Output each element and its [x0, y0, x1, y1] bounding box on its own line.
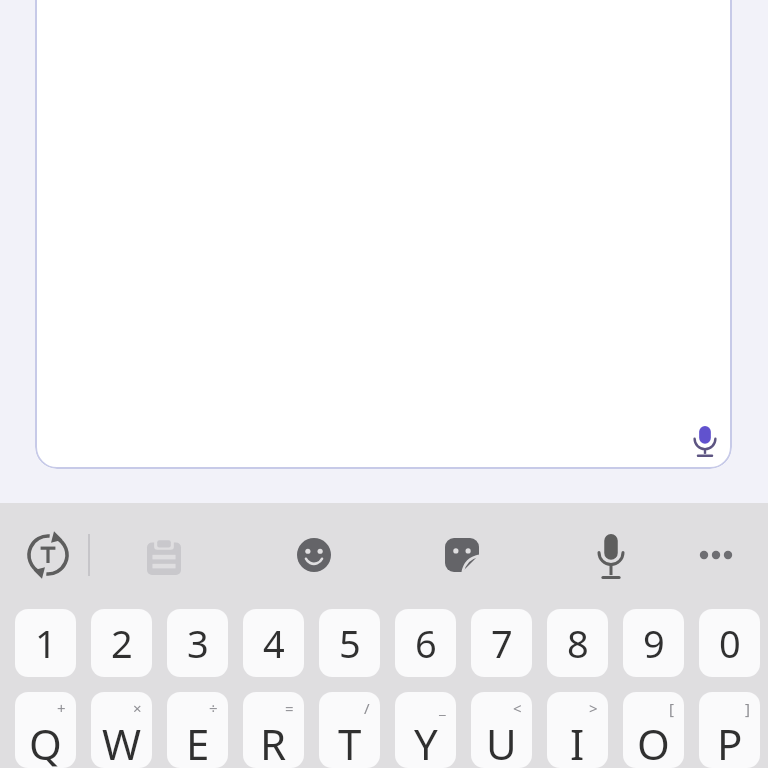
button[interactable]: 8 — [547, 609, 608, 677]
staticText: 5 — [339, 617, 361, 669]
staticText: = — [285, 698, 294, 718]
staticText: / — [364, 698, 370, 718]
button[interactable]: ] — [699, 692, 760, 768]
button[interactable]: / — [319, 692, 380, 768]
button[interactable]: 0 — [699, 609, 760, 677]
staticText: 3 — [187, 617, 209, 669]
staticText: ÷ — [209, 698, 218, 718]
staticText: + — [57, 698, 66, 718]
staticText: × — [133, 698, 142, 718]
button[interactable]: 5 — [319, 609, 380, 677]
staticText: R — [260, 715, 287, 768]
staticText: Y — [414, 715, 438, 768]
staticText: I — [570, 715, 585, 768]
staticText: ] — [745, 698, 750, 718]
button[interactable]: [ — [623, 692, 684, 768]
staticText: U — [486, 715, 517, 768]
button[interactable]: × — [91, 692, 152, 768]
button[interactable] — [445, 538, 479, 572]
staticText: 1 — [35, 617, 57, 669]
button[interactable]: = — [243, 692, 304, 768]
button[interactable] — [26, 533, 70, 577]
staticText: W — [102, 715, 142, 768]
button[interactable] — [596, 534, 626, 579]
staticText: > — [589, 698, 598, 718]
button[interactable] — [35, 0, 732, 469]
button[interactable]: 6 — [395, 609, 456, 677]
button[interactable]: 4 — [243, 609, 304, 677]
button[interactable]: + — [15, 692, 76, 768]
staticText: [ — [669, 698, 674, 718]
button[interactable]: 2 — [91, 609, 152, 677]
staticText: 6 — [415, 617, 437, 669]
button[interactable]: _ — [395, 692, 456, 768]
staticText: _ — [439, 698, 446, 718]
staticText: E — [186, 715, 210, 768]
staticText: 8 — [567, 617, 589, 669]
staticText: Q — [29, 715, 62, 768]
button[interactable]: > — [547, 692, 608, 768]
button[interactable] — [297, 538, 331, 572]
staticText: 9 — [643, 617, 665, 669]
staticText: 0 — [719, 617, 741, 669]
button[interactable]: 1 — [15, 609, 76, 677]
staticText: T — [338, 715, 362, 768]
button[interactable] — [696, 550, 736, 560]
button[interactable]: ÷ — [167, 692, 228, 768]
button[interactable] — [692, 426, 718, 457]
staticText: O — [637, 715, 670, 768]
staticText: 7 — [491, 617, 513, 669]
button[interactable]: 7 — [471, 609, 532, 677]
button[interactable] — [147, 539, 181, 575]
button[interactable]: 3 — [167, 609, 228, 677]
staticText: < — [513, 698, 522, 718]
button[interactable]: 9 — [623, 609, 684, 677]
button[interactable]: < — [471, 692, 532, 768]
staticText: 4 — [263, 617, 285, 669]
staticText: P — [717, 715, 743, 768]
staticText: 2 — [111, 617, 133, 669]
